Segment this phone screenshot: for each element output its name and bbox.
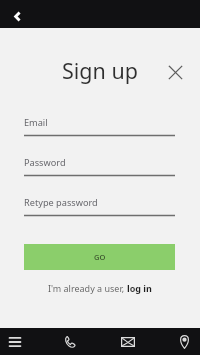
button[interactable]: GO xyxy=(24,244,175,270)
staticText: Retype password xyxy=(24,196,98,209)
button[interactable]: Retype password xyxy=(24,194,175,218)
button[interactable]: Call xyxy=(55,328,85,355)
staticText: I'm already a user, xyxy=(48,282,127,294)
button[interactable]: Email xyxy=(24,114,175,138)
staticText: log in xyxy=(127,282,152,294)
staticText: Email xyxy=(24,116,48,129)
button[interactable]: Password xyxy=(24,154,175,178)
button[interactable]: Back xyxy=(6,5,28,27)
staticText: GO xyxy=(94,252,106,262)
staticText: Password xyxy=(24,156,66,169)
button[interactable]: Location xyxy=(169,328,199,355)
button[interactable]: Mail xyxy=(113,328,143,355)
staticText: Sign up xyxy=(62,56,138,85)
button[interactable]: Close xyxy=(164,61,186,83)
button[interactable]: log in xyxy=(127,282,152,294)
button[interactable]: Menu xyxy=(0,328,30,355)
